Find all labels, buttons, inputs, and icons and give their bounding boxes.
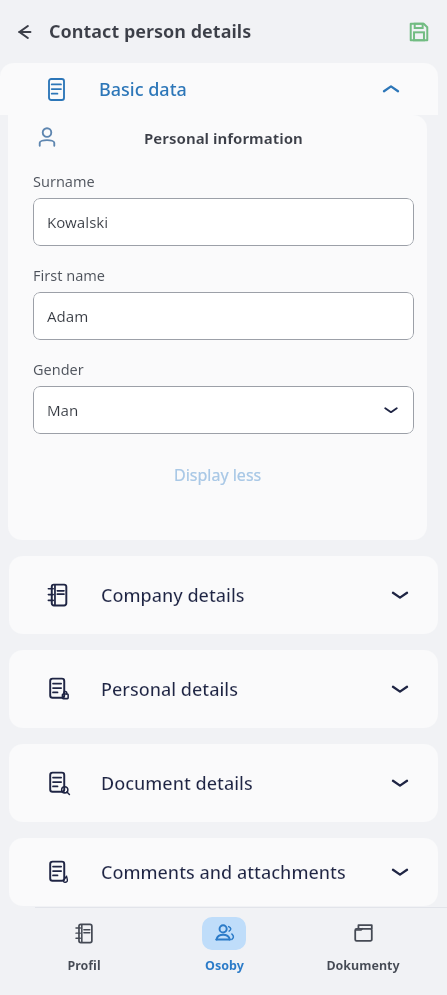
staticText: First name [33,265,106,285]
staticText: Basic data [99,77,187,102]
staticText: Comments and attachments [101,860,346,885]
button[interactable]: Basic data [0,63,438,115]
button[interactable]: Adam [33,292,414,340]
button[interactable]: Back [8,16,40,48]
button[interactable]: Personal details [9,650,438,728]
staticText: Adam [47,306,89,326]
button[interactable]: Man [33,386,414,434]
staticText: Dokumenty [326,957,400,974]
staticText: Contact person details [49,19,252,44]
staticText: Man [47,400,79,420]
button[interactable]: Osoby [169,908,279,974]
staticText: Personal details [101,677,238,702]
staticText: Display less [174,464,262,486]
button[interactable]: Display less [164,460,272,490]
staticText: Profil [67,957,101,974]
staticText: Kowalski [47,212,109,232]
button[interactable]: Dokumenty [308,908,418,974]
button[interactable]: Save [401,14,437,50]
staticText: Gender [33,359,84,379]
button[interactable]: Profil [29,908,139,974]
staticText: Surname [33,171,95,191]
button[interactable]: Document details [9,744,438,822]
staticText: Personal information [144,128,303,148]
button[interactable]: Kowalski [33,198,414,246]
button[interactable]: Comments and attachments [9,838,438,906]
button[interactable]: Company details [9,556,438,634]
staticText: Company details [101,583,245,608]
staticText: Osoby [205,957,244,974]
staticText: Document details [101,771,253,796]
